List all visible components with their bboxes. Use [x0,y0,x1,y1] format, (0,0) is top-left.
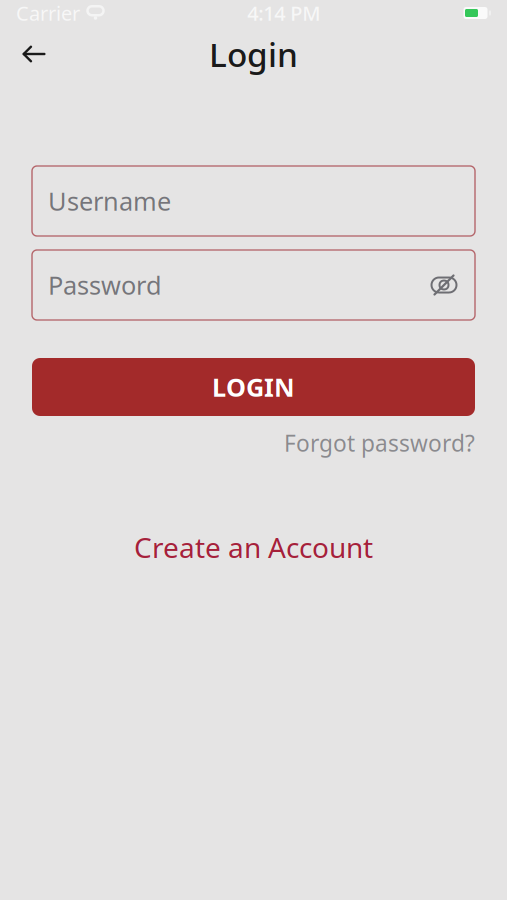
button[interactable]: Back [12,32,56,76]
button[interactable]: LOGIN [32,358,475,416]
staticText: Create an Account [134,528,373,566]
button[interactable]: Forgot password? [284,428,475,458]
staticText: Carrier [16,0,80,26]
button[interactable]: Create an Account [32,530,475,564]
button[interactable]: Username [32,166,475,236]
staticText: Password [48,268,162,302]
staticText: 4:14 PM [247,0,320,26]
staticText: LOGIN [212,370,295,404]
staticText: Forgot password? [284,428,475,458]
staticText: Login [209,32,298,76]
button[interactable]: Password [32,250,475,320]
staticText: Username [48,184,171,218]
